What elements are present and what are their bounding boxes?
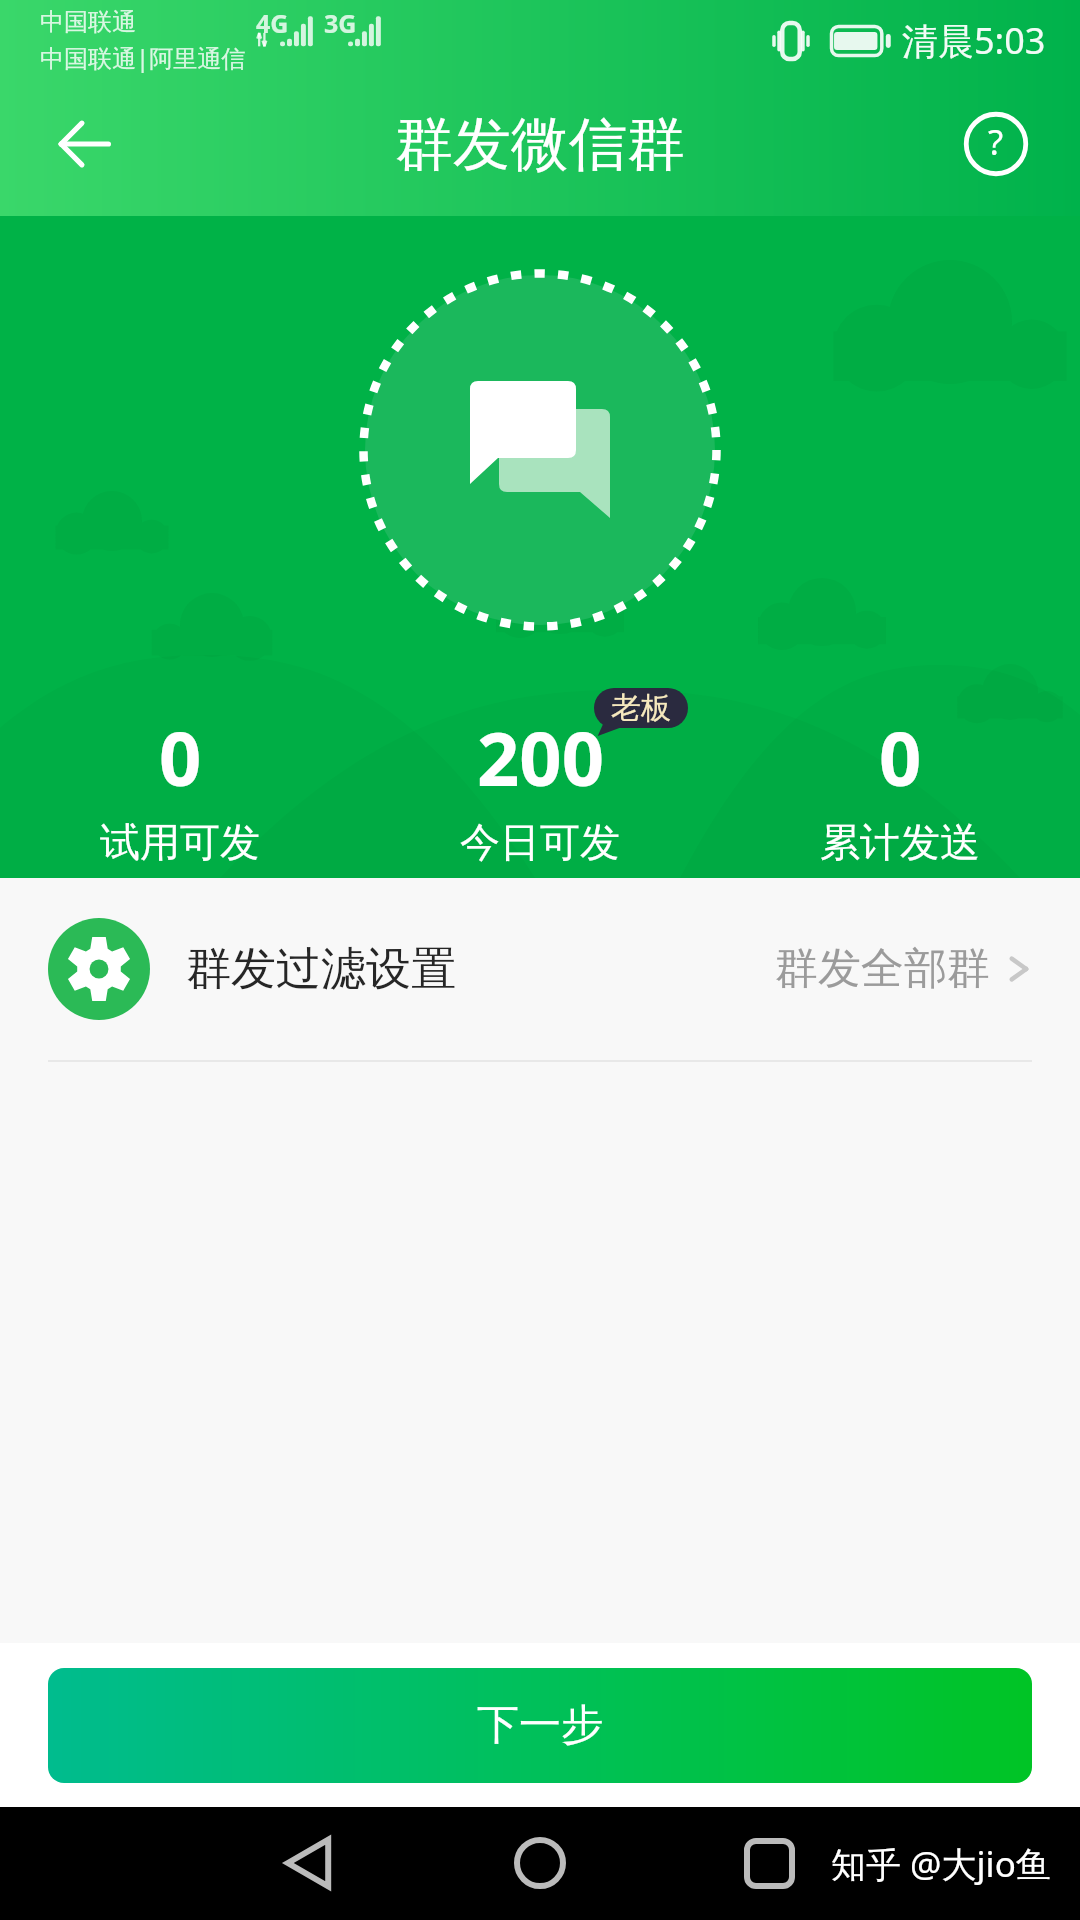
button[interactable]: 群发过滤设置 — [0, 878, 1080, 1060]
staticText: 中国联通|阿里通信 — [40, 41, 246, 74]
staticText: 0 — [159, 707, 202, 808]
button[interactable]: Back — [36, 96, 132, 192]
staticText: 累计发送 — [820, 817, 980, 867]
button[interactable]: Help — [948, 96, 1044, 192]
staticText: 群发全部群 — [775, 942, 990, 996]
staticText: 0 — [879, 707, 922, 808]
button[interactable]: Recents — [714, 1808, 824, 1918]
staticText: 试用可发 — [100, 817, 260, 867]
staticText: 群发过滤设置 — [186, 941, 456, 998]
staticText: 知乎 @大jio鱼 — [831, 1840, 1051, 1888]
staticText: 老板 — [611, 689, 671, 727]
button[interactable]: Home — [485, 1808, 595, 1918]
button[interactable]: Back — [254, 1808, 364, 1918]
staticText: 3G — [324, 6, 357, 40]
staticText: 清晨5:03 — [902, 16, 1046, 65]
staticText: 下一步 — [477, 1699, 603, 1752]
staticText: ? — [988, 118, 1004, 166]
staticText: 200 — [477, 707, 604, 808]
staticText: 今日可发 — [460, 817, 620, 867]
staticText: 中国联通 — [40, 7, 136, 37]
staticText: 4G — [256, 6, 289, 40]
staticText: 群发微信群 — [395, 108, 685, 181]
button[interactable]: 下一步 — [48, 1668, 1032, 1783]
